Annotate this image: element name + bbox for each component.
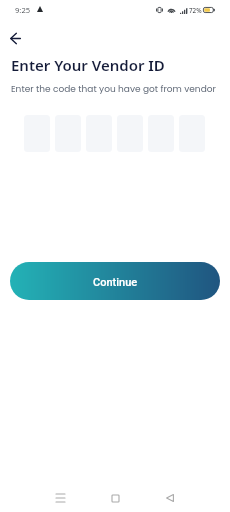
button[interactable]: Home bbox=[103, 486, 127, 510]
staticText: Enter the code that you have got from ve… bbox=[11, 83, 216, 96]
button[interactable]: Recent apps bbox=[48, 486, 72, 510]
staticText: Enter Your Vendor ID bbox=[11, 55, 165, 75]
staticText: 72% bbox=[189, 6, 202, 15]
staticText: 9:25 bbox=[15, 5, 31, 15]
staticText: Continue bbox=[93, 276, 138, 289]
button[interactable]: Back bbox=[3, 26, 28, 51]
button[interactable]: Continue bbox=[10, 262, 220, 300]
button[interactable]: Back bbox=[158, 486, 182, 510]
